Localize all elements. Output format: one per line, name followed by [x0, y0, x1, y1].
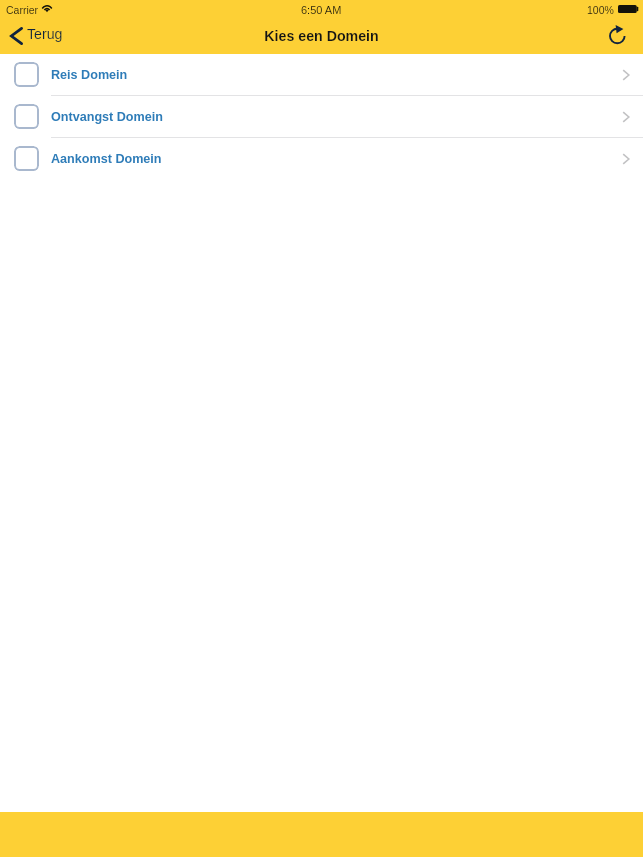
button[interactable]: Reis Domein	[0, 54, 643, 96]
staticText: 6:50 AM	[301, 4, 342, 16]
staticText: Aankomst Domein	[51, 152, 162, 166]
staticText: Terug	[27, 26, 63, 42]
button[interactable]: Ontvangst Domein	[0, 96, 643, 138]
staticText: 100%	[587, 4, 614, 16]
staticText: Reis Domein	[51, 68, 128, 82]
staticText: Kies een Domein	[264, 28, 379, 44]
staticText: Carrier	[6, 4, 39, 16]
button[interactable]: Terug	[0, 24, 73, 50]
button[interactable]: Refresh	[600, 24, 643, 51]
button[interactable]: Aankomst Domein	[0, 138, 643, 179]
staticText: Ontvangst Domein	[51, 110, 163, 124]
